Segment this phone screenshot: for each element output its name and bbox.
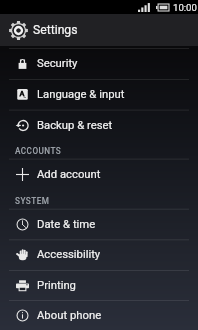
- staticText: About phone: [37, 309, 102, 322]
- button[interactable]: Add account: [0, 159, 198, 190]
- staticText: SYSTEM: [15, 196, 50, 206]
- button[interactable]: Backup & reset: [0, 110, 198, 141]
- button[interactable]: About phone: [0, 300, 198, 330]
- button[interactable]: Language & input: [0, 79, 198, 110]
- staticText: Add account: [37, 168, 101, 181]
- staticText: Backup & reset: [37, 119, 113, 132]
- staticText: Settings: [33, 23, 78, 37]
- button[interactable]: Settings: [0, 14, 198, 46]
- staticText: 10:00: [173, 2, 197, 13]
- button[interactable]: Date & time: [0, 209, 198, 240]
- staticText: Date & time: [37, 218, 96, 231]
- staticText: Printing: [37, 279, 76, 292]
- staticText: Language & input: [37, 88, 125, 101]
- staticText: Security: [37, 57, 78, 70]
- button[interactable]: Accessibility: [0, 239, 198, 270]
- button[interactable]: Printing: [0, 270, 198, 300]
- button[interactable]: Security: [0, 48, 198, 79]
- staticText: ACCOUNTS: [15, 146, 62, 156]
- staticText: Accessibility: [37, 248, 101, 261]
